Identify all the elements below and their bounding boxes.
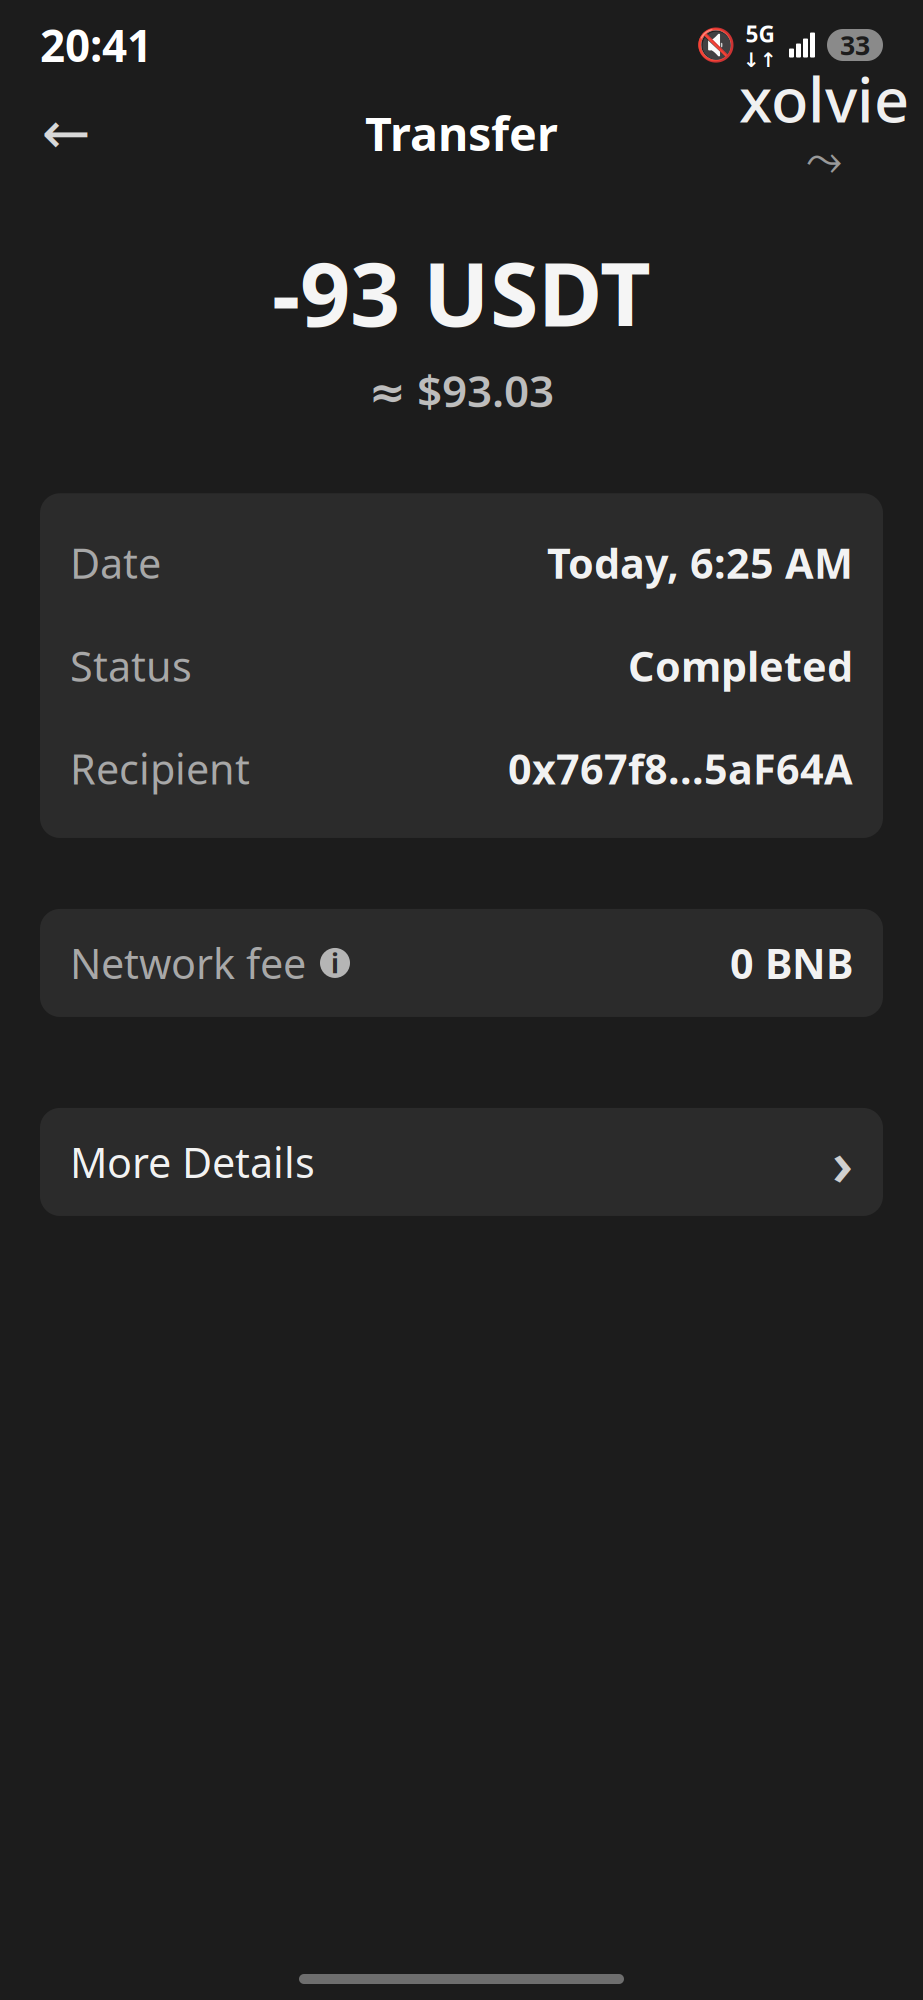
staticText: Date [70, 535, 161, 590]
staticText: 0x767f8...5aF64A [508, 741, 853, 796]
staticText: 33 [840, 27, 870, 63]
staticText: ⤳ [806, 139, 842, 184]
staticText: Network fee [70, 935, 306, 990]
staticText: Recipient [70, 741, 250, 796]
button[interactable]: Network fee [40, 909, 883, 1017]
staticText: Completed [628, 638, 853, 693]
staticText: 20:41 [40, 16, 152, 74]
staticText: ← [41, 100, 90, 166]
staticText: Transfer [365, 102, 558, 164]
staticText: ↓↑ [743, 49, 777, 71]
staticText: xolvie [739, 58, 909, 139]
staticText: ≈ $93.03 [369, 361, 554, 419]
staticText: More Details [70, 1134, 315, 1189]
staticText: 🔇 [696, 27, 736, 63]
staticText: 0 BNB [730, 935, 853, 990]
button[interactable]: More Details [40, 1108, 883, 1216]
staticText: Today, 6:25 AM [547, 535, 853, 590]
staticText: › [832, 1121, 853, 1203]
staticText: i [331, 945, 339, 981]
staticText: 5G [745, 19, 774, 49]
staticText: -93 USDT [272, 234, 651, 351]
staticText: Status [70, 638, 192, 693]
button[interactable]: Back [26, 93, 106, 173]
